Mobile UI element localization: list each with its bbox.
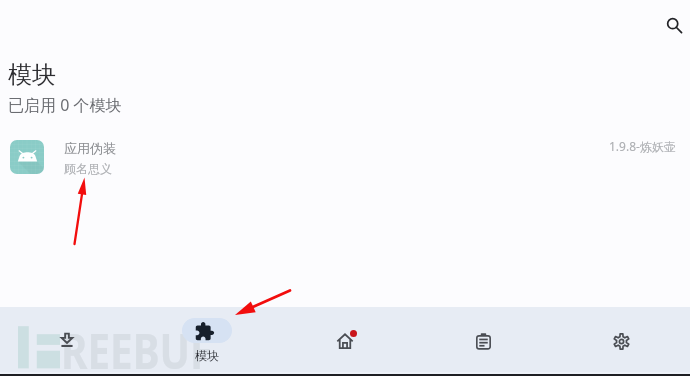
button[interactable]: Home: [276, 307, 414, 376]
button[interactable]: Search: [657, 8, 690, 43]
staticText: 顾名思义: [64, 161, 112, 176]
staticText: REEBUF: [61, 318, 212, 376]
button[interactable]: Downloads: [0, 307, 138, 376]
button[interactable]: 应用伪装: [0, 133, 690, 181]
staticText: 已启用 0 个模块: [8, 94, 122, 116]
button[interactable]: Logs: [414, 307, 552, 376]
staticText: 1.9.8-炼妖壶: [609, 138, 676, 154]
button[interactable]: Modules: [138, 307, 276, 376]
staticText: 模块: [8, 60, 56, 90]
button[interactable]: Settings: [552, 307, 690, 376]
staticText: 应用伪装: [64, 140, 116, 156]
staticText: 模块: [195, 348, 219, 363]
